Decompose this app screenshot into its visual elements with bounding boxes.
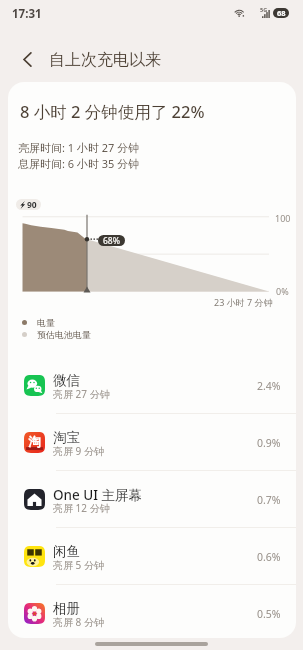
staticText: 8 小时 2 分钟使用了 22% bbox=[20, 100, 205, 123]
staticText: 0% bbox=[276, 285, 289, 297]
staticText: 自上次充电以来 bbox=[49, 50, 161, 70]
staticText: 息屏时间: 6 小时 35 分钟 bbox=[18, 156, 140, 171]
staticText: 亮屏 8 分钟 bbox=[53, 615, 104, 629]
button[interactable]: 相册 bbox=[8, 585, 296, 638]
staticText: 100 bbox=[275, 212, 291, 224]
staticText: 亮屏 27 分钟 bbox=[53, 387, 110, 401]
staticText: 5G bbox=[260, 6, 268, 13]
staticText: 68 bbox=[277, 8, 286, 18]
staticText: 0.5% bbox=[257, 607, 281, 621]
staticText: One UI 主屏幕 bbox=[53, 486, 143, 504]
staticText: 0.7% bbox=[257, 493, 281, 507]
staticText: 0.6% bbox=[257, 550, 281, 564]
button[interactable]: 返回 bbox=[13, 45, 42, 74]
staticText: 电量 bbox=[37, 317, 55, 328]
staticText: 相册 bbox=[53, 600, 80, 617]
staticText: 淘宝 bbox=[53, 429, 80, 446]
staticText: 17:31 bbox=[12, 6, 42, 22]
staticText: 亮屏时间: 1 小时 27 分钟 bbox=[18, 140, 140, 155]
staticText: 亮屏 9 分钟 bbox=[53, 444, 104, 458]
staticText: 亮屏 12 分钟 bbox=[53, 501, 110, 515]
staticText: 微信 bbox=[53, 372, 80, 389]
staticText: 淘 bbox=[28, 434, 41, 450]
staticText: 23 小时 7 分钟 bbox=[214, 296, 273, 308]
staticText: 预估电池电量 bbox=[37, 329, 91, 340]
button[interactable]: 微信 bbox=[8, 357, 296, 414]
button[interactable]: 淘 bbox=[8, 414, 296, 471]
staticText: 亮屏 5 分钟 bbox=[53, 558, 104, 572]
staticText: 90 bbox=[27, 199, 37, 210]
staticText: 2.4% bbox=[257, 379, 281, 393]
button[interactable]: One UI 主屏幕 bbox=[8, 471, 296, 528]
staticText: 68% bbox=[103, 235, 120, 246]
button[interactable]: 闲鱼 bbox=[8, 528, 296, 585]
staticText: 闲鱼 bbox=[53, 543, 80, 560]
staticText: 0.9% bbox=[257, 436, 281, 450]
